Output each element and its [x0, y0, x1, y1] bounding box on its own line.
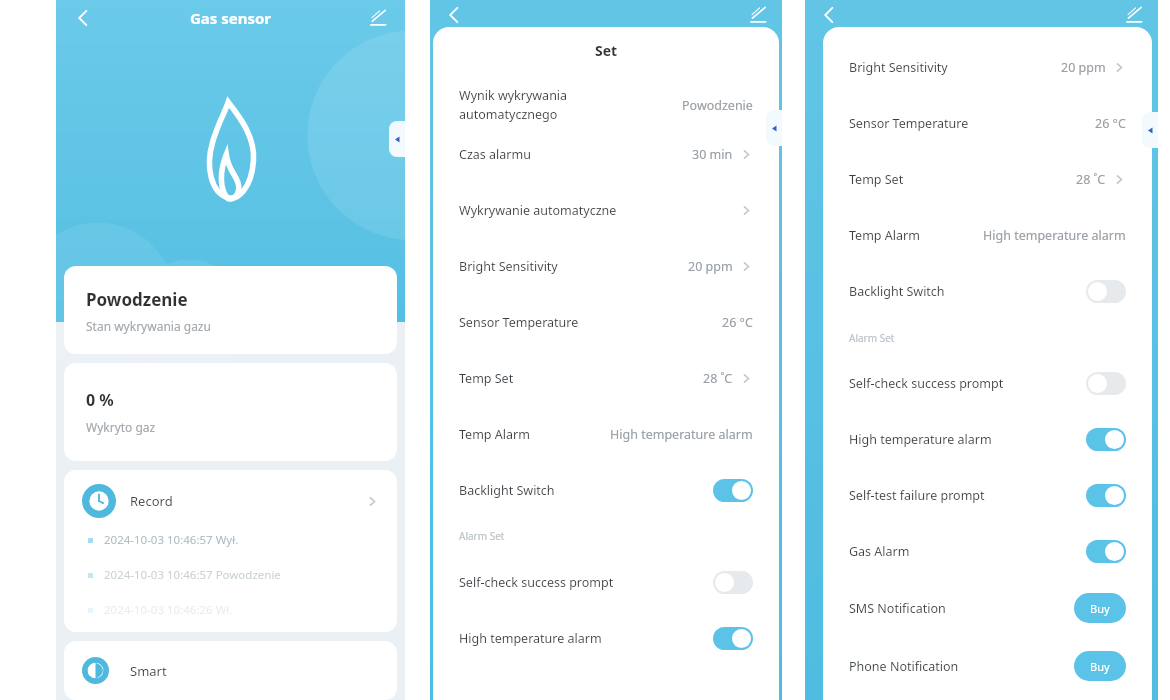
button[interactable]: Edit — [1120, 1, 1148, 29]
staticText: Buy — [1090, 601, 1110, 616]
staticText: Wykrywanie automatyczne — [459, 202, 617, 219]
staticText: Gas Alarm — [849, 543, 910, 560]
staticText: Temp Alarm — [459, 426, 530, 443]
staticText: 2024-10-03 10:46:26 Wł. — [104, 602, 233, 618]
button[interactable]: Back — [815, 1, 843, 29]
button[interactable]: Bright Sensitivity — [459, 238, 753, 294]
button[interactable]: Switch on — [1086, 484, 1126, 507]
staticText: Phone Notification — [849, 658, 959, 675]
staticText: Alarm Set — [459, 529, 505, 543]
button[interactable]: Expand panel — [1142, 112, 1158, 148]
staticText: Sensor Temperature — [459, 314, 579, 331]
button[interactable]: Back — [68, 3, 98, 33]
staticText: High temperature alarm — [849, 431, 992, 448]
staticText: Backlight Switch — [459, 482, 555, 499]
staticText: Temp Set — [459, 370, 514, 387]
button[interactable]: Expand panel — [766, 110, 782, 146]
staticText: 26 °C — [1095, 115, 1126, 132]
button[interactable]: Edit — [363, 3, 393, 33]
staticText: Self-test failure prompt — [849, 487, 985, 504]
staticText: Temp Alarm — [849, 227, 920, 244]
staticText: Buy — [1090, 659, 1110, 674]
staticText: Sensor Temperature — [849, 115, 969, 132]
staticText: Bright Sensitivity — [459, 258, 558, 275]
staticText: Wykryto gaz — [86, 419, 156, 435]
staticText: 20 ppm — [688, 258, 733, 275]
staticText: High temperature alarm — [459, 630, 602, 647]
button[interactable]: Temp Alarm — [849, 207, 1126, 263]
staticText: Gas sensor — [98, 8, 363, 28]
button[interactable]: Switch on — [713, 627, 753, 650]
button[interactable]: Temp Set — [459, 350, 753, 406]
button[interactable]: Sensor Temperature — [459, 294, 753, 350]
staticText: Stan wykrywania gazu — [86, 318, 211, 334]
staticText: 0 % — [86, 389, 114, 411]
staticText: 2024-10-03 10:46:57 Wył. — [104, 532, 239, 548]
button[interactable]: Expand panel — [389, 121, 405, 157]
staticText: Set — [459, 41, 753, 60]
button[interactable]: Switch off — [1086, 372, 1126, 395]
button[interactable]: Self-test failure prompt — [849, 467, 1126, 523]
staticText: Powodzenie — [86, 288, 188, 311]
button[interactable]: Buy — [1074, 651, 1126, 681]
button[interactable]: Wynik wykrywania automatycznego — [459, 84, 753, 126]
button[interactable]: Switch on — [713, 479, 753, 502]
button[interactable]: Backlight Switch — [459, 462, 753, 518]
button[interactable]: Czas alarmu — [459, 126, 753, 182]
staticText: Backlight Switch — [849, 283, 945, 300]
button[interactable]: Temp Alarm — [459, 406, 753, 462]
button[interactable]: Gas Alarm — [849, 523, 1126, 579]
button[interactable]: Backlight Switch — [849, 263, 1126, 320]
button[interactable]: High temperature alarm — [459, 610, 753, 666]
staticText: Bright Sensitivity — [849, 59, 948, 76]
staticText: Temp Set — [849, 171, 904, 188]
staticText: Self-check success prompt — [459, 574, 614, 591]
staticText: 30 min — [692, 146, 733, 163]
button[interactable]: High temperature alarm — [849, 411, 1126, 467]
staticText: 20 ppm — [1061, 59, 1106, 76]
button[interactable]: Buy — [1074, 593, 1126, 623]
button[interactable]: Smart — [82, 657, 379, 684]
staticText: SMS Notification — [849, 600, 946, 617]
button[interactable]: Record — [82, 484, 379, 518]
button[interactable]: Back — [440, 1, 468, 29]
button[interactable]: Switch on — [1086, 428, 1126, 451]
button[interactable]: Switch off — [1086, 280, 1126, 303]
button[interactable]: Bright Sensitivity — [849, 39, 1126, 95]
button[interactable]: Self-check success prompt — [459, 554, 753, 610]
staticText: 28 ˚C — [1076, 171, 1106, 188]
button[interactable]: Sensor Temperature — [849, 95, 1126, 151]
staticText: Czas alarmu — [459, 146, 531, 163]
button[interactable]: Phone Notification — [849, 637, 1126, 695]
staticText: Smart — [130, 662, 167, 680]
staticText: 26 °C — [722, 314, 753, 331]
button[interactable]: Switch on — [1086, 540, 1126, 563]
staticText: Powodzenie — [682, 97, 753, 114]
button[interactable]: Temp Set — [849, 151, 1126, 207]
staticText: High temperature alarm — [610, 426, 753, 443]
staticText: Wynik wykrywania automatycznego — [459, 87, 568, 123]
staticText: Record — [130, 492, 173, 510]
staticText: 28 ˚C — [703, 370, 733, 387]
button[interactable]: SMS Notification — [849, 579, 1126, 637]
staticText: 2024-10-03 10:46:57 Powodzenie — [104, 567, 281, 583]
button[interactable]: Self-check success prompt — [849, 355, 1126, 411]
button[interactable]: Wykrywanie automatyczne — [459, 182, 753, 238]
button[interactable]: Switch off — [713, 571, 753, 594]
staticText: High temperature alarm — [983, 227, 1126, 244]
staticText: Self-check success prompt — [849, 375, 1004, 392]
staticText: Alarm Set — [849, 331, 895, 345]
button[interactable]: Edit — [744, 1, 772, 29]
